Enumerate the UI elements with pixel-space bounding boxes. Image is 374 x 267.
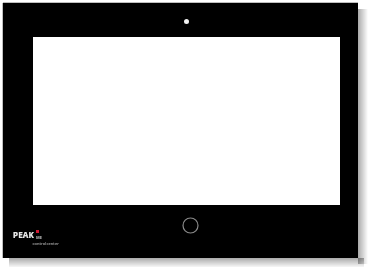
staticText: controlcenter [13, 241, 59, 246]
staticText: PEAK [13, 229, 35, 240]
staticText: ME [36, 235, 43, 240]
button[interactable]: Home [182, 217, 199, 234]
other: Front camera [184, 19, 189, 24]
button[interactable]: PEAK [13, 229, 61, 246]
